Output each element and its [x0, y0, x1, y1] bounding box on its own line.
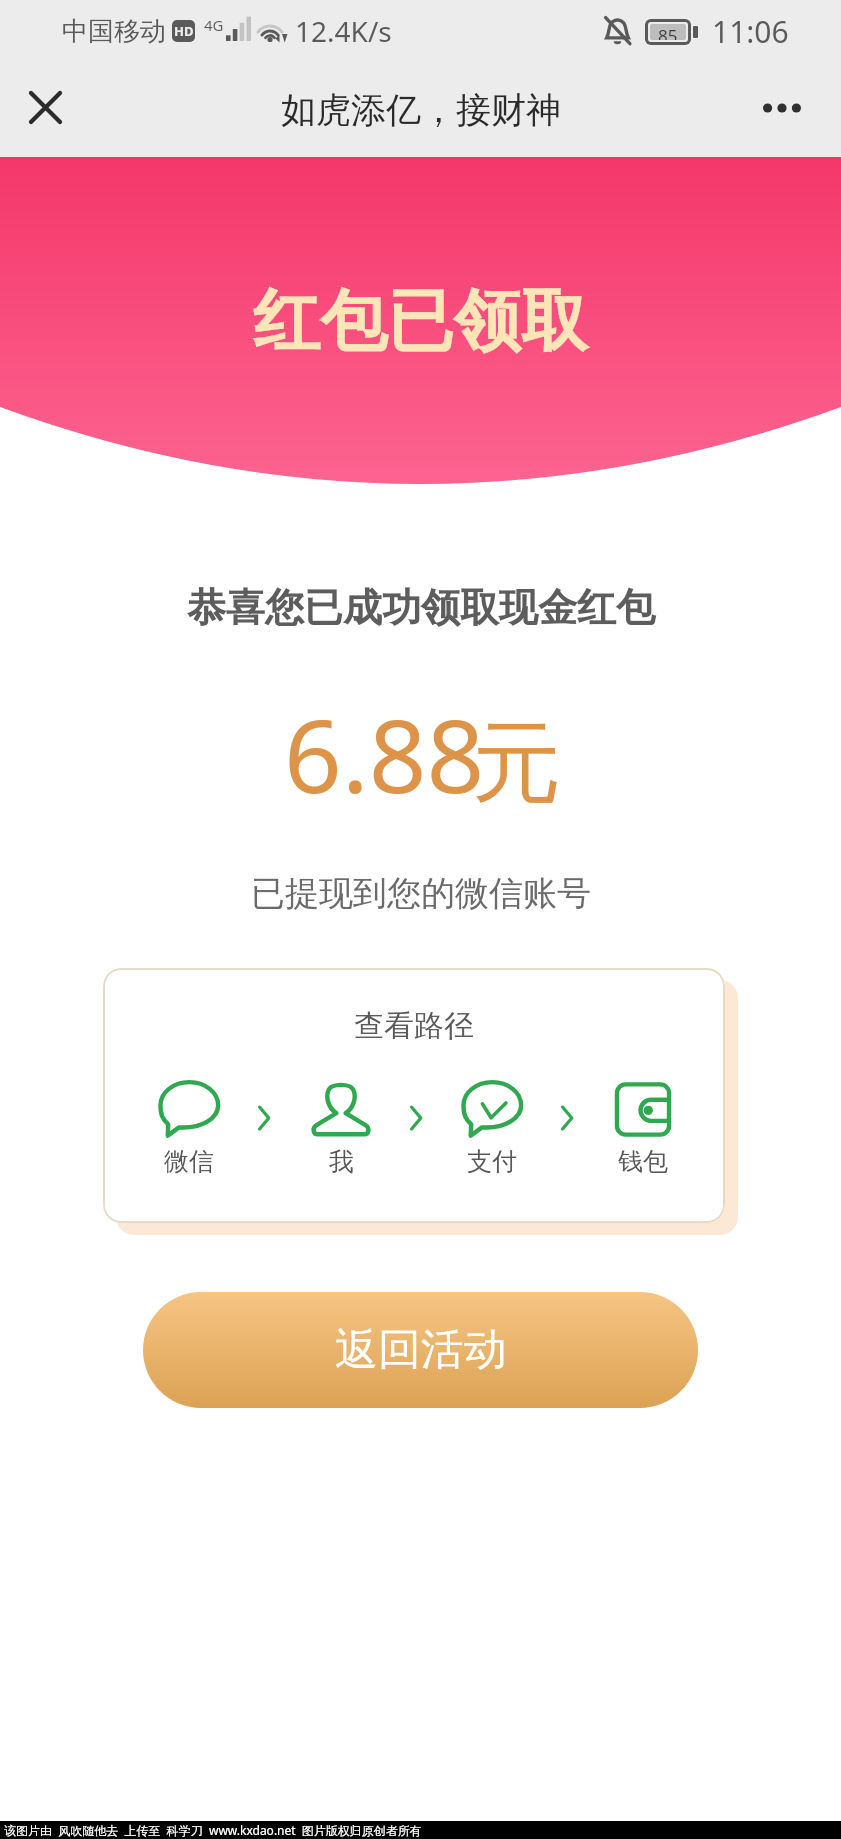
staticText: 微信 [164, 1146, 214, 1177]
button[interactable]: More options [751, 77, 813, 139]
button[interactable]: 返回活动 [143, 1292, 698, 1408]
button[interactable]: 微信 [158, 1081, 220, 1177]
staticText: 该图片由 风吹随他去 上传至 科学刀 www.kxdao.net 图片版权归原创… [4, 1822, 422, 1838]
staticText: 我 [329, 1146, 354, 1177]
staticText: 4G [204, 15, 224, 35]
staticText: 红包已领取 [253, 279, 588, 363]
staticText: 元 [472, 707, 561, 819]
staticText: 85 [658, 24, 678, 40]
button[interactable]: 钱包 [612, 1081, 674, 1177]
staticText: 11:06 [712, 11, 789, 52]
staticText: 已提现到您的微信账号 [251, 872, 591, 915]
staticText: 支付 [467, 1146, 517, 1177]
staticText: 返回活动 [335, 1323, 507, 1377]
button[interactable]: Close [14, 76, 76, 138]
staticText: 6.88 [284, 685, 485, 823]
staticText: HD [174, 22, 194, 40]
staticText: 恭喜您已成功领取现金红包 [187, 583, 655, 632]
button[interactable]: 我 [310, 1081, 372, 1177]
staticText: 钱包 [618, 1146, 668, 1177]
button[interactable]: 支付 [461, 1081, 523, 1177]
staticText: 如虎添亿，接财神 [281, 88, 561, 132]
staticText: 中国移动 [62, 15, 166, 48]
staticText: 12.4K/s [295, 12, 392, 50]
staticText: 查看路径 [354, 1007, 474, 1045]
